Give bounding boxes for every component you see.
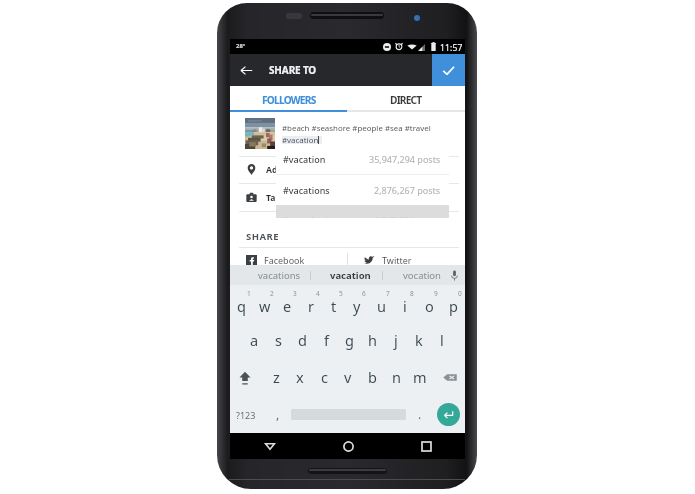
button[interactable]: 4 — [299, 285, 322, 322]
button[interactable]: s — [266, 322, 290, 359]
button[interactable]: n — [384, 359, 408, 396]
staticText: . — [418, 406, 422, 422]
button[interactable]: f — [314, 322, 338, 359]
button[interactable]: m — [408, 359, 432, 396]
staticText: s — [275, 330, 282, 350]
button[interactable]: Space — [288, 396, 408, 433]
button[interactable]: vacation — [322, 265, 378, 285]
staticText: Facebook — [264, 254, 305, 266]
button[interactable]: DIRECT — [347, 86, 465, 110]
button[interactable]: Confirm share — [432, 54, 465, 86]
staticText: x — [296, 367, 304, 387]
button[interactable]: 1 — [230, 285, 253, 322]
button[interactable]: Voice input — [443, 265, 465, 285]
staticText: n — [392, 367, 401, 387]
staticText: FOLLOWERS — [262, 93, 316, 107]
button[interactable]: vocation — [393, 265, 450, 285]
staticText: ?123 — [236, 409, 256, 421]
button[interactable]: k — [407, 322, 430, 359]
staticText: f — [324, 330, 329, 350]
button[interactable]: d — [290, 322, 314, 359]
button[interactable]: , — [268, 396, 288, 433]
button[interactable]: Back — [230, 54, 262, 86]
staticText: z — [273, 367, 280, 387]
staticText: #vacation — [282, 135, 319, 146]
staticText: w — [259, 296, 271, 316]
staticText: d — [298, 330, 307, 350]
staticText: 3 — [293, 289, 297, 298]
staticText: DIRECT — [390, 93, 422, 107]
staticText: SHARE TO — [269, 63, 317, 77]
button[interactable]: 9 — [417, 285, 441, 322]
staticText: 5 — [339, 289, 343, 298]
button[interactable]: 5 — [322, 285, 345, 322]
button[interactable]: v — [336, 359, 360, 396]
staticText: 2,876,267 posts — [374, 184, 441, 196]
button[interactable]: . — [410, 396, 430, 433]
staticText: 9 — [434, 289, 438, 298]
staticText: e — [283, 296, 292, 316]
button[interactable]: Backspace — [432, 359, 465, 396]
button[interactable]: Add Location — [230, 156, 465, 183]
button[interactable]: 7 — [369, 285, 393, 322]
staticText: 8 — [410, 289, 414, 298]
staticText: #beach #seashore #people #sea #travel — [282, 123, 431, 134]
staticText: p — [449, 296, 458, 316]
staticText: 2 — [270, 289, 274, 298]
button[interactable]: Shift — [230, 359, 264, 396]
staticText: 35,947,294 posts — [369, 153, 441, 165]
staticText: i — [403, 296, 407, 316]
button[interactable]: Home — [309, 433, 387, 459]
button[interactable]: Enter — [437, 403, 460, 426]
staticText: a — [250, 330, 259, 350]
staticText: #vacations — [283, 184, 330, 196]
staticText: m — [413, 367, 427, 387]
staticText: t — [331, 296, 337, 316]
button[interactable]: c — [312, 359, 336, 396]
button[interactable]: x — [288, 359, 312, 396]
staticText: vocation — [403, 269, 441, 282]
button[interactable]: 6 — [345, 285, 369, 322]
staticText: h — [368, 330, 377, 350]
button[interactable]: h — [361, 322, 384, 359]
button[interactable]: Twitter — [348, 253, 465, 267]
staticText: vacations — [258, 269, 301, 282]
staticText: v — [344, 367, 352, 387]
staticText: vacation — [330, 269, 371, 282]
staticText: k — [415, 330, 423, 350]
staticText: 28° — [236, 42, 246, 50]
button[interactable]: 0 — [441, 285, 465, 322]
button[interactable]: g — [338, 322, 361, 359]
staticText: o — [425, 296, 434, 316]
staticText: u — [377, 296, 386, 316]
button[interactable]: Back — [230, 433, 309, 459]
staticText: , — [276, 406, 280, 422]
button[interactable]: 3 — [276, 285, 299, 322]
staticText: Tag People — [266, 192, 313, 204]
staticText: r — [308, 296, 314, 316]
staticText: b — [368, 367, 377, 387]
staticText: SHARE — [246, 230, 280, 243]
button[interactable]: FOLLOWERS — [230, 86, 347, 110]
button[interactable]: 2 — [253, 285, 276, 322]
button[interactable]: Tag People — [230, 184, 465, 211]
button[interactable]: #vacation — [276, 144, 449, 174]
button[interactable]: a — [242, 322, 266, 359]
staticText: Add Location — [266, 164, 323, 176]
staticText: #vacation — [283, 153, 326, 165]
button[interactable]: ?123 — [232, 396, 260, 433]
button[interactable]: j — [384, 322, 407, 359]
button[interactable]: Facebook — [230, 253, 347, 267]
button[interactable]: l — [430, 322, 453, 359]
button[interactable]: vacations — [251, 265, 308, 285]
button[interactable]: #vacations — [276, 175, 449, 205]
button[interactable]: 8 — [393, 285, 417, 322]
button[interactable]: z — [264, 359, 288, 396]
staticText: y — [353, 296, 361, 316]
button[interactable]: b — [360, 359, 384, 396]
staticText: l — [440, 330, 444, 350]
button[interactable]: Recent apps — [387, 433, 465, 459]
staticText: c — [321, 367, 328, 387]
